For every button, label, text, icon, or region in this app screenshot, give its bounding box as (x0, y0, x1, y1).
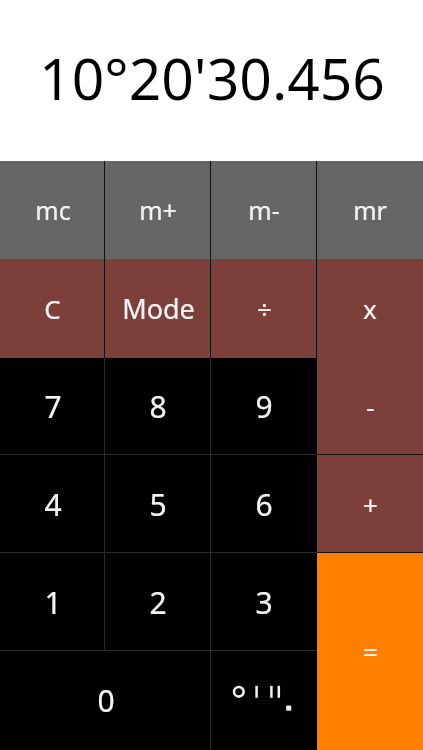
button[interactable]: mr (317, 161, 423, 259)
button[interactable]: Degrees minutes seconds decimal (211, 651, 317, 750)
staticText: 6 (255, 484, 273, 525)
staticText: 0 (97, 680, 115, 721)
button[interactable]: - (317, 358, 423, 455)
button[interactable]: ÷ (211, 259, 317, 358)
staticText: x (363, 291, 377, 326)
staticText: 10°20'30.456 (39, 39, 385, 117)
staticText: Mode (122, 290, 195, 327)
staticText: 3 (255, 582, 273, 623)
button[interactable]: C (0, 259, 105, 358)
button[interactable]: = (317, 553, 423, 750)
button[interactable]: 2 (105, 553, 211, 651)
staticText: - (366, 389, 375, 424)
button[interactable]: mc (0, 161, 105, 259)
button[interactable]: 0 (0, 651, 211, 750)
staticText: + (363, 487, 378, 522)
button[interactable]: + (317, 455, 423, 553)
staticText: 7 (44, 386, 62, 427)
button[interactable]: 3 (211, 553, 317, 651)
button[interactable]: 7 (0, 358, 105, 455)
button[interactable]: Mode (105, 259, 211, 358)
staticText: 8 (149, 386, 167, 427)
button[interactable]: 1 (0, 553, 105, 651)
staticText: C (44, 291, 61, 326)
button[interactable]: m- (211, 161, 317, 259)
staticText: ÷ (257, 291, 272, 326)
staticText: 9 (255, 386, 273, 427)
staticText: 5 (149, 484, 167, 525)
staticText: = (363, 634, 378, 669)
button[interactable]: 5 (105, 455, 211, 553)
staticText: 2 (149, 582, 167, 623)
button[interactable]: x (317, 259, 423, 358)
staticText: m+ (139, 193, 177, 227)
button[interactable]: 4 (0, 455, 105, 553)
staticText: 4 (44, 484, 62, 525)
button[interactable]: 9 (211, 358, 317, 455)
button[interactable]: 6 (211, 455, 317, 553)
staticText: m- (248, 193, 280, 227)
staticText: mr (353, 193, 387, 227)
button[interactable]: 8 (105, 358, 211, 455)
staticText: 1 (44, 582, 62, 623)
button[interactable]: m+ (105, 161, 211, 259)
staticText: mc (35, 193, 71, 227)
